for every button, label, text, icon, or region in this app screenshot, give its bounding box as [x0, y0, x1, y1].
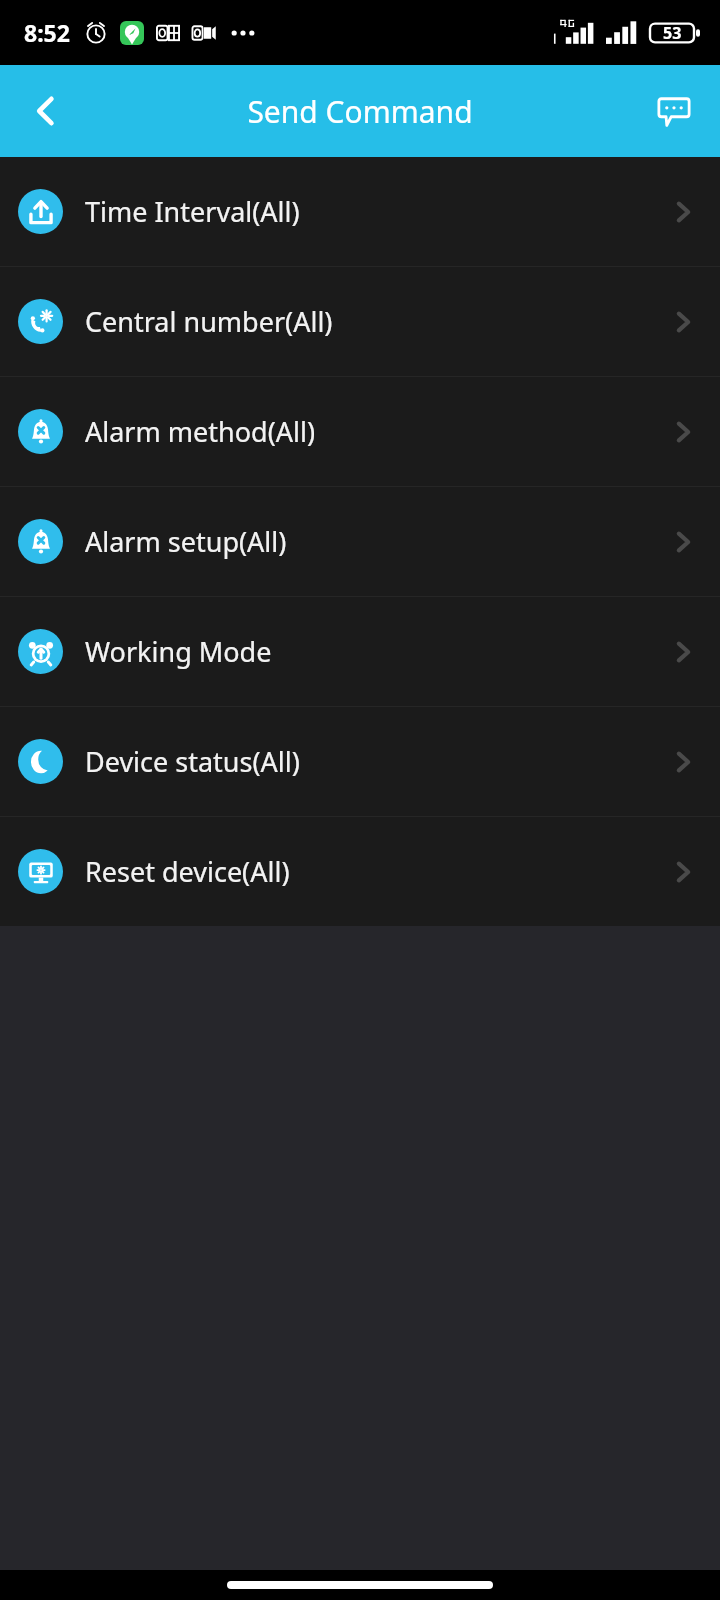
staticText: Device status(All)	[85, 743, 670, 780]
button[interactable]: Messages	[642, 79, 706, 143]
button[interactable]: Working Mode	[0, 597, 720, 706]
button[interactable]: Device status(All)	[0, 707, 720, 816]
staticText: 53	[663, 22, 682, 44]
staticText: Send Command	[247, 91, 473, 132]
staticText: Alarm method(All)	[85, 413, 670, 450]
staticText: Central number(All)	[85, 303, 670, 340]
button[interactable]: Time Interval(All)	[0, 157, 720, 266]
button[interactable]: Back	[12, 77, 80, 145]
staticText: Time Interval(All)	[85, 193, 670, 230]
button[interactable]: Alarm method(All)	[0, 377, 720, 486]
staticText: 8:52	[24, 17, 70, 48]
staticText: Working Mode	[85, 633, 670, 670]
button[interactable]: Reset device(All)	[0, 817, 720, 926]
button[interactable]: Central number(All)	[0, 267, 720, 376]
staticText: Reset device(All)	[85, 853, 670, 890]
staticText: Alarm setup(All)	[85, 523, 670, 560]
button[interactable]: Alarm setup(All)	[0, 487, 720, 596]
